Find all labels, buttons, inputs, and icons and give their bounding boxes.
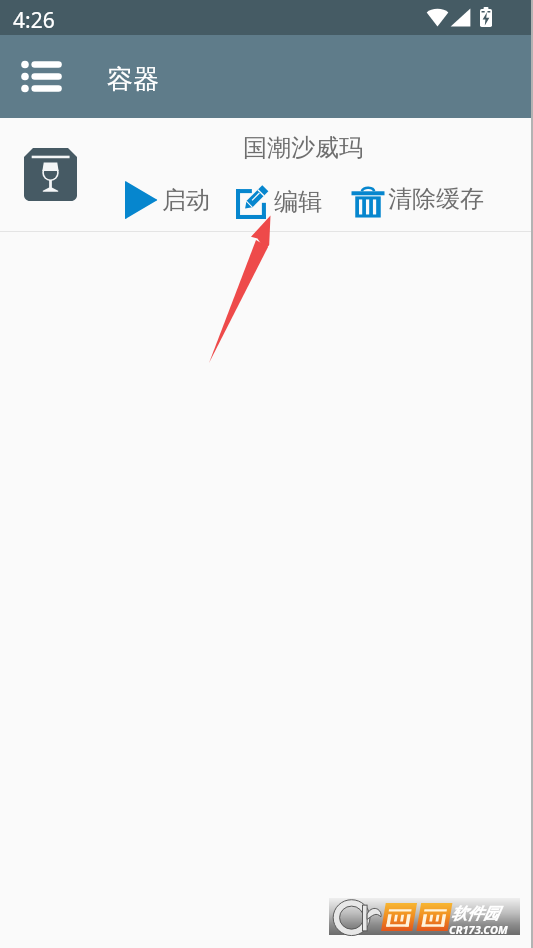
staticText: 4:26 (13, 6, 55, 35)
button[interactable]: 清除缓存 (351, 186, 484, 218)
staticText: 启动 (162, 185, 210, 215)
button[interactable]: 启动 (125, 180, 210, 220)
button[interactable]: 编辑 (236, 184, 322, 219)
staticText: 软件园 (451, 904, 499, 924)
button[interactable]: 容器图标 (14, 138, 87, 211)
staticText: 国潮沙威玛 (243, 133, 363, 163)
staticText: CR173.COM (449, 922, 508, 937)
button[interactable]: Menu (6, 45, 78, 107)
staticText: 编辑 (274, 187, 322, 217)
staticText: 清除缓存 (388, 184, 484, 214)
staticText: 容器 (107, 63, 159, 96)
